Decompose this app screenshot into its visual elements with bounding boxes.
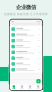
button[interactable] (10, 55, 42, 61)
button[interactable]: Tab (18, 85, 26, 89)
button[interactable] (10, 26, 42, 32)
button[interactable]: New message (36, 79, 41, 83)
button[interactable] (10, 32, 42, 38)
button[interactable] (10, 67, 42, 73)
staticText: + (37, 79, 39, 83)
button[interactable] (10, 49, 42, 55)
button[interactable]: Messages (10, 85, 18, 89)
button[interactable] (10, 38, 42, 44)
staticText: 连接微信 高效沟通 让工作更简单 (4, 13, 48, 16)
staticText: 企业微信 (16, 4, 36, 11)
button[interactable]: Tab (26, 85, 34, 89)
button[interactable] (10, 61, 42, 67)
staticText: 9:41 (11, 21, 14, 23)
button[interactable]: Tab (34, 85, 42, 89)
button[interactable] (10, 44, 42, 49)
